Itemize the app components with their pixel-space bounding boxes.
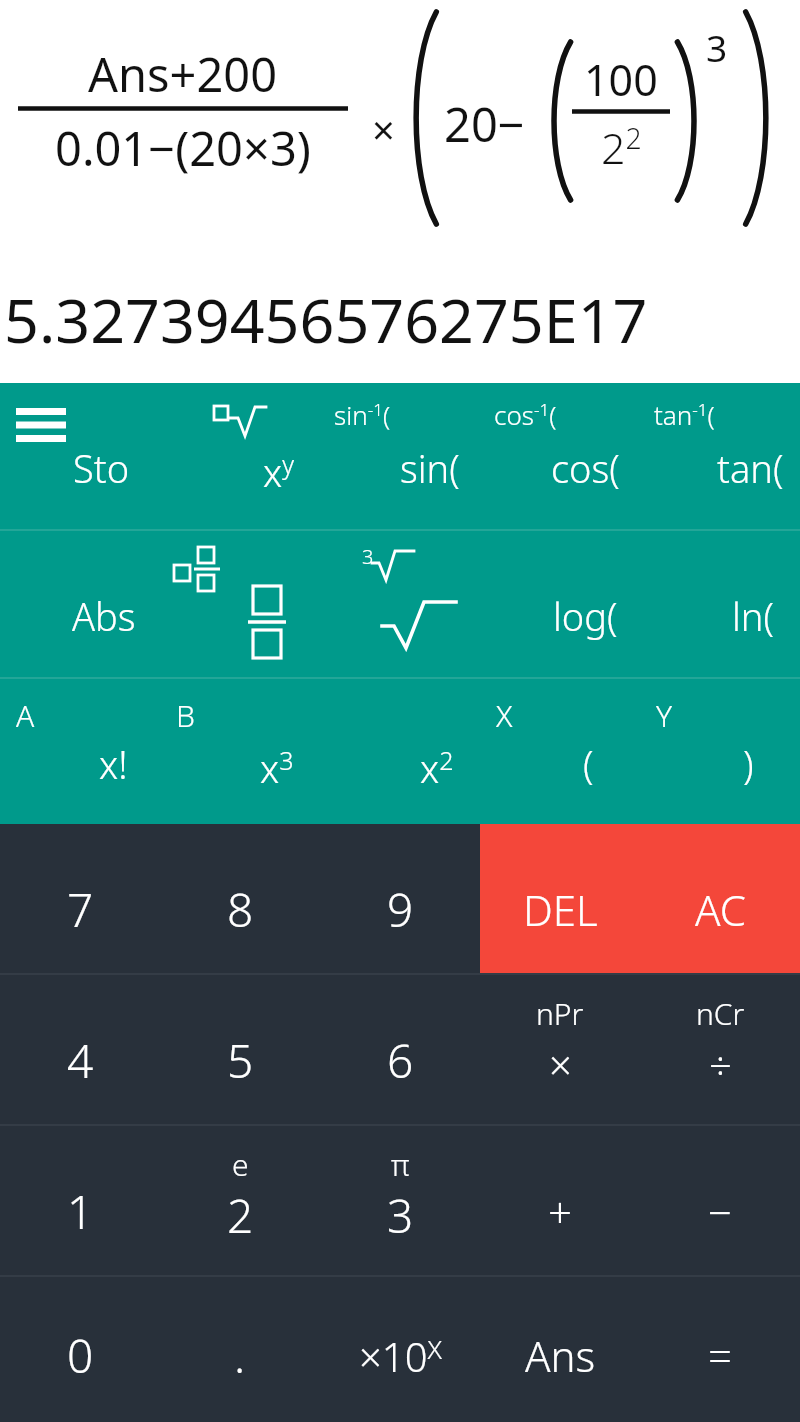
staticText: = xyxy=(708,1327,732,1384)
button[interactable]: 2, e xyxy=(160,1126,320,1276)
staticText: x! xyxy=(99,738,128,790)
staticText: 3 xyxy=(706,22,728,72)
staticText: . xyxy=(234,1324,246,1387)
staticText: 5 xyxy=(227,1029,254,1092)
button[interactable]: times ten to the power x xyxy=(320,1277,480,1422)
staticText: ÷ xyxy=(709,1037,732,1091)
staticText: 22 xyxy=(601,118,642,177)
staticText: log( xyxy=(553,590,618,642)
staticText: X xyxy=(496,695,513,736)
button[interactable]: x cubed xyxy=(160,679,320,824)
button[interactable]: factorial xyxy=(0,679,160,824)
staticText: 0.01−(20×3) xyxy=(55,116,311,180)
button[interactable]: All clear xyxy=(640,824,800,974)
staticText: Ans xyxy=(525,1327,596,1384)
button[interactable]: log xyxy=(480,531,640,678)
button[interactable]: Fraction xyxy=(160,531,320,678)
button[interactable]: 1 xyxy=(0,1126,160,1276)
staticText: × xyxy=(549,1037,572,1091)
staticText: sin( xyxy=(400,442,460,494)
button[interactable]: 4 xyxy=(0,975,160,1125)
button[interactable]: Absolute value xyxy=(0,531,160,678)
button[interactable]: 6 xyxy=(320,975,480,1125)
button[interactable]: 8 xyxy=(160,824,320,974)
button[interactable]: natural log xyxy=(640,531,800,678)
staticText: Abs xyxy=(72,590,136,642)
button[interactable]: 5 xyxy=(160,975,320,1125)
button[interactable]: tangent xyxy=(640,383,800,530)
button[interactable]: 7 xyxy=(0,824,160,974)
staticText: cos-1( xyxy=(494,397,557,432)
staticText: e xyxy=(232,1144,249,1185)
staticText: 0 xyxy=(67,1324,94,1387)
staticText: 9 xyxy=(387,878,414,941)
button[interactable]: equals xyxy=(640,1277,800,1422)
button[interactable]: x to the power y xyxy=(160,383,320,530)
button[interactable]: Menu, Sto xyxy=(0,383,160,530)
staticText: tan( xyxy=(717,442,784,494)
button[interactable]: minus xyxy=(640,1126,800,1276)
staticText: sin-1( xyxy=(334,397,391,432)
button[interactable]: Answer xyxy=(480,1277,640,1422)
staticText: − xyxy=(708,1183,732,1240)
staticText: AC xyxy=(695,881,746,938)
staticText: × xyxy=(372,102,395,156)
button[interactable]: plus xyxy=(480,1126,640,1276)
staticText: nPr xyxy=(536,993,584,1034)
staticText: Y xyxy=(656,695,673,736)
staticText: 7 xyxy=(67,878,94,941)
button[interactable]: cosine xyxy=(480,383,640,530)
staticText: 2 xyxy=(227,1184,254,1247)
staticText: Ans+200 xyxy=(88,42,278,106)
button[interactable]: 3, pi xyxy=(320,1126,480,1276)
button[interactable]: Square root xyxy=(320,531,480,678)
button[interactable]: sine xyxy=(320,383,480,530)
staticText: 4 xyxy=(67,1029,94,1092)
staticText: ) xyxy=(743,738,754,790)
staticText: 20− xyxy=(444,92,525,156)
button[interactable]: 0 xyxy=(0,1277,160,1422)
staticText: x2 xyxy=(420,742,454,794)
staticText: B xyxy=(176,695,195,736)
staticText: A xyxy=(16,695,35,736)
button[interactable]: Delete xyxy=(480,824,640,974)
button[interactable]: multiply, nPr xyxy=(480,975,640,1125)
button[interactable]: open parenthesis xyxy=(480,679,640,824)
staticText: + xyxy=(548,1183,572,1240)
staticText: 3 xyxy=(387,1184,414,1247)
button[interactable]: x squared xyxy=(320,679,480,824)
staticText: 3 xyxy=(362,543,374,570)
staticText: cos( xyxy=(551,442,620,494)
button[interactable]: divide, nCr xyxy=(640,975,800,1125)
staticText: tan-1( xyxy=(654,397,715,432)
button[interactable]: 9 xyxy=(320,824,480,974)
staticText: ( xyxy=(583,738,594,790)
staticText: x3 xyxy=(260,742,294,794)
staticText: 1 xyxy=(67,1180,94,1243)
staticText: ×10X xyxy=(359,1329,442,1383)
staticText: xy xyxy=(263,446,294,498)
staticText: π xyxy=(391,1144,410,1185)
button[interactable]: decimal point xyxy=(160,1277,320,1422)
staticText: DEL xyxy=(523,881,598,938)
staticText: Sto xyxy=(73,442,130,494)
staticText: 5.32739456576275E17 xyxy=(4,278,648,361)
button[interactable]: close parenthesis xyxy=(640,679,800,824)
staticText: 8 xyxy=(227,878,254,941)
staticText: nCr xyxy=(696,993,745,1034)
staticText: 6 xyxy=(387,1029,414,1092)
staticText: 100 xyxy=(584,50,658,109)
staticText: ln( xyxy=(732,590,774,642)
